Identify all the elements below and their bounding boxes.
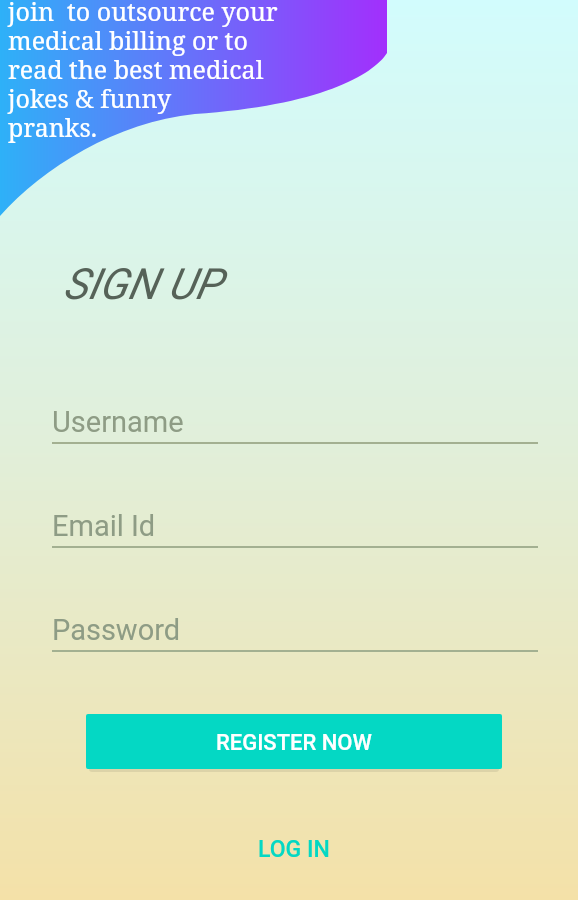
staticText: Email Id (52, 509, 156, 543)
staticText: join to outsource your medical billing o… (8, 0, 278, 143)
staticText: Password (52, 613, 181, 647)
staticText: SIGN UP (63, 259, 222, 309)
button[interactable]: LOG IN (242, 826, 346, 873)
button[interactable]: REGISTER NOW (86, 714, 502, 769)
staticText: Username (52, 405, 184, 439)
staticText: LOG IN (258, 836, 330, 863)
staticText: REGISTER NOW (216, 730, 372, 756)
